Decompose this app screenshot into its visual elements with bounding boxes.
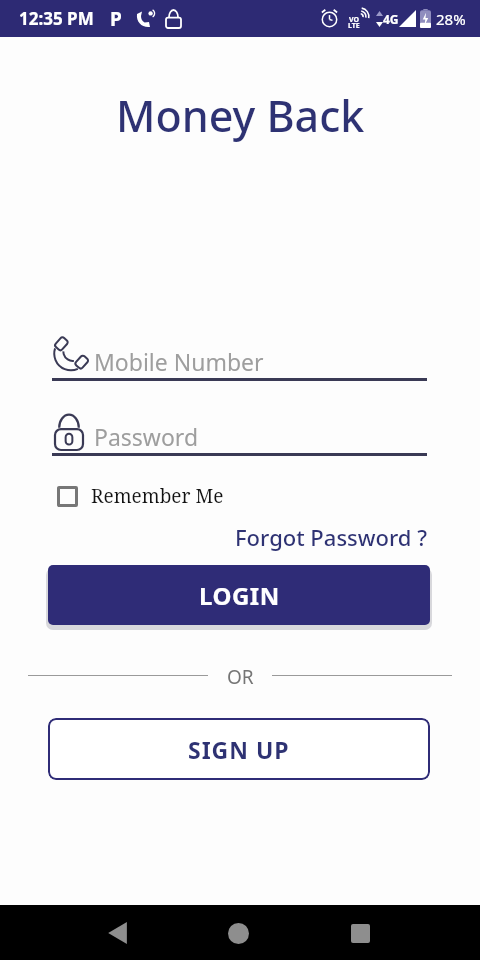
staticText: SIGN UP xyxy=(188,734,290,765)
staticText: Money Back xyxy=(116,86,365,145)
button[interactable]: Remember Me xyxy=(57,483,224,509)
staticText: Remember Me xyxy=(91,483,224,509)
staticText: Password xyxy=(94,421,199,452)
staticText: LOGIN xyxy=(199,579,280,612)
staticText: Mobile Number xyxy=(94,346,264,377)
button[interactable]: SIGN UP xyxy=(48,718,430,780)
staticText: 28% xyxy=(436,9,466,29)
button[interactable] xyxy=(48,336,428,382)
staticText: 4G xyxy=(383,11,399,27)
button[interactable] xyxy=(106,922,128,944)
staticText: OR xyxy=(227,664,254,690)
staticText: VO xyxy=(349,15,360,25)
button[interactable]: Forgot Password ? xyxy=(235,522,428,552)
staticText: LTE xyxy=(348,21,360,31)
staticText: P xyxy=(110,6,122,32)
staticText: 12:35 PM xyxy=(19,7,94,30)
button[interactable]: LOGIN xyxy=(48,565,430,625)
button[interactable] xyxy=(48,411,428,457)
button[interactable] xyxy=(228,923,249,944)
button[interactable] xyxy=(351,924,370,943)
